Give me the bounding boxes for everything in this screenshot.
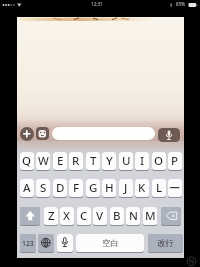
button[interactable]: ー [168,179,182,198]
button[interactable]: V [93,207,107,226]
button[interactable]: A [20,179,34,198]
staticText: F [73,180,80,196]
staticText: D [56,180,65,196]
staticText: 123 [22,239,34,248]
staticText: V [96,208,104,224]
staticText: S [40,180,47,196]
button[interactable] [161,207,181,226]
button[interactable]: L [152,179,166,198]
staticText: K [138,180,146,196]
staticText: Z [48,208,55,224]
button[interactable]: 123 [20,234,36,253]
button[interactable]: Q [20,152,34,171]
button[interactable] [36,127,49,140]
button[interactable]: S [36,179,50,198]
button[interactable]: Y [102,152,116,171]
button[interactable] [52,127,155,140]
button[interactable] [57,234,73,253]
staticText: A [23,180,31,196]
staticText: 改行 [157,238,174,249]
staticText: J [124,180,128,196]
staticText: W [38,153,49,169]
staticText: O [154,153,164,169]
button[interactable]: U [119,152,133,171]
staticText: Y [106,153,113,169]
staticText: R [72,153,80,169]
button[interactable]: N [126,207,140,226]
staticText: ー [169,181,181,195]
button[interactable]: B [110,207,124,226]
staticText: 12:31 [91,1,103,7]
staticText: G [89,180,98,196]
staticText: T [90,153,97,169]
button[interactable] [158,128,180,142]
staticText: C [80,208,88,224]
staticText: H [105,180,114,196]
button[interactable]: I [135,152,149,171]
button[interactable]: C [77,207,91,226]
button[interactable]: F [69,179,83,198]
staticText: X [63,208,71,224]
button[interactable]: Z [44,207,58,226]
staticText: P [171,153,179,169]
button[interactable]: D [53,179,67,198]
staticText: 空白 [102,238,119,249]
button[interactable]: T [86,152,100,171]
staticText: B [113,208,121,224]
button[interactable]: P [168,152,182,171]
button[interactable]: M [143,207,157,226]
button[interactable]: J [119,179,133,198]
staticText: 85% [176,1,186,7]
button[interactable] [20,207,40,226]
button[interactable] [38,234,54,253]
button[interactable]: H [102,179,116,198]
button[interactable]: 改行 [148,234,183,253]
staticText: N [129,208,138,224]
button[interactable] [20,127,34,141]
staticText: Q [22,153,32,169]
staticText: M [145,208,156,224]
button[interactable]: X [60,207,74,226]
button[interactable]: E [53,152,67,171]
button[interactable]: O [152,152,166,171]
button[interactable]: K [135,179,149,198]
staticText: U [122,153,131,169]
staticText: I [140,153,145,169]
button[interactable]: R [69,152,83,171]
button[interactable]: G [86,179,100,198]
button[interactable]: W [36,152,50,171]
staticText: L [156,180,163,196]
button[interactable]: 空白 [76,234,144,253]
staticText: E [57,153,64,169]
